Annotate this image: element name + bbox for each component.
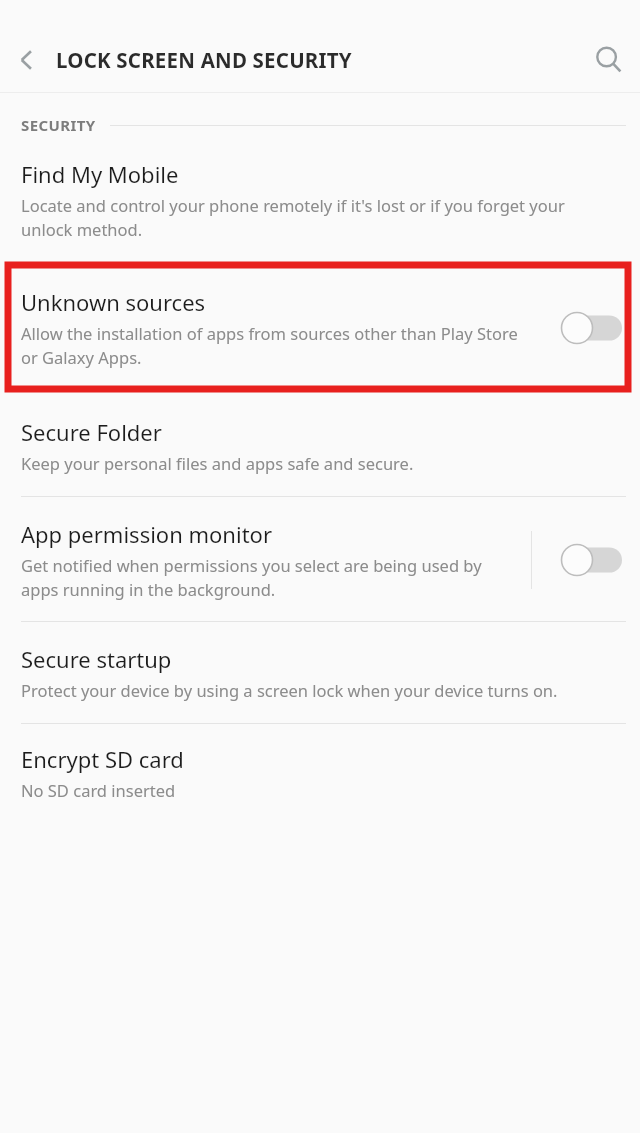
button[interactable]: Secure startup: [0, 622, 640, 723]
staticText: Protect your device by using a screen lo…: [21, 679, 558, 701]
button[interactable]: Secure Folder: [0, 393, 640, 496]
button[interactable]: Toggle Unknown sources: [554, 303, 628, 353]
staticText: Secure startup: [21, 644, 172, 674]
button[interactable]: Unknown sources: [0, 261, 640, 393]
button[interactable]: Encrypt SD card: [0, 724, 640, 821]
staticText: Locate and control your phone remotely i…: [21, 194, 588, 241]
button[interactable]: Find My Mobile: [0, 145, 640, 261]
staticText: SECURITY: [21, 115, 96, 135]
staticText: Get notified when permissions you select…: [21, 554, 517, 601]
button[interactable]: Back: [0, 33, 54, 87]
staticText: Find My Mobile: [21, 159, 179, 189]
staticText: Encrypt SD card: [21, 744, 184, 774]
button[interactable]: App permission monitor: [0, 497, 640, 621]
staticText: App permission monitor: [21, 519, 272, 549]
button[interactable]: Toggle App permission monitor: [554, 535, 628, 585]
staticText: Keep your personal files and apps safe a…: [21, 452, 414, 474]
staticText: Unknown sources: [21, 287, 206, 317]
staticText: LOCK SCREEN AND SECURITY: [56, 46, 578, 74]
staticText: Allow the installation of apps from sour…: [21, 322, 524, 369]
staticText: No SD card inserted: [21, 779, 176, 801]
staticText: Secure Folder: [21, 417, 162, 447]
button[interactable]: Search: [578, 29, 640, 91]
